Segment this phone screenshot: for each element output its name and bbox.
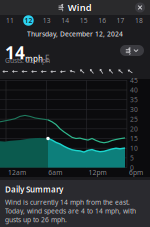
button[interactable]: 16: [94, 14, 110, 27]
button[interactable]: Change chart metric: [120, 45, 144, 56]
staticText: 0: [130, 163, 134, 172]
button[interactable]: 15: [76, 14, 92, 27]
staticText: Thursday, December 12, 2024: [27, 30, 123, 38]
staticText: 35: [130, 95, 138, 104]
staticText: 12: [24, 16, 32, 25]
staticText: Daily Summary: [5, 184, 63, 195]
staticText: 30: [130, 105, 138, 114]
staticText: 25: [130, 115, 138, 124]
staticText: 12am: [8, 168, 26, 177]
staticText: mph: [25, 53, 43, 64]
staticText: 13: [43, 16, 51, 25]
staticText: Gusts: 22 mph: [5, 56, 50, 65]
staticText: 15: [80, 16, 88, 25]
staticText: 10: [130, 144, 138, 153]
staticText: 5: [130, 153, 134, 162]
button[interactable]: 13: [39, 14, 55, 27]
staticText: 15: [130, 134, 138, 143]
staticText: 6pm: [129, 168, 143, 177]
button[interactable]: 17: [113, 14, 129, 27]
button[interactable]: 12: [20, 14, 36, 27]
staticText: 12pm: [89, 168, 107, 177]
staticText: 20: [130, 124, 138, 133]
staticText: Wind: [68, 1, 92, 14]
staticText: Wind is currently 14 mph from the east. …: [5, 198, 136, 224]
staticText: 11: [6, 16, 14, 25]
staticText: 6am: [48, 168, 62, 177]
staticText: 17: [117, 16, 125, 25]
staticText: 18: [135, 16, 143, 25]
staticText: 40: [130, 86, 138, 94]
button[interactable]: 18: [131, 14, 147, 27]
button[interactable]: Close: [133, 0, 147, 14]
staticText: 14: [5, 41, 25, 64]
staticText: E: [43, 53, 49, 64]
staticText: 45: [130, 76, 138, 85]
staticText: 16: [98, 16, 106, 25]
staticText: 14: [61, 16, 69, 25]
button[interactable]: 11: [2, 14, 18, 27]
button[interactable]: 14: [57, 14, 73, 27]
